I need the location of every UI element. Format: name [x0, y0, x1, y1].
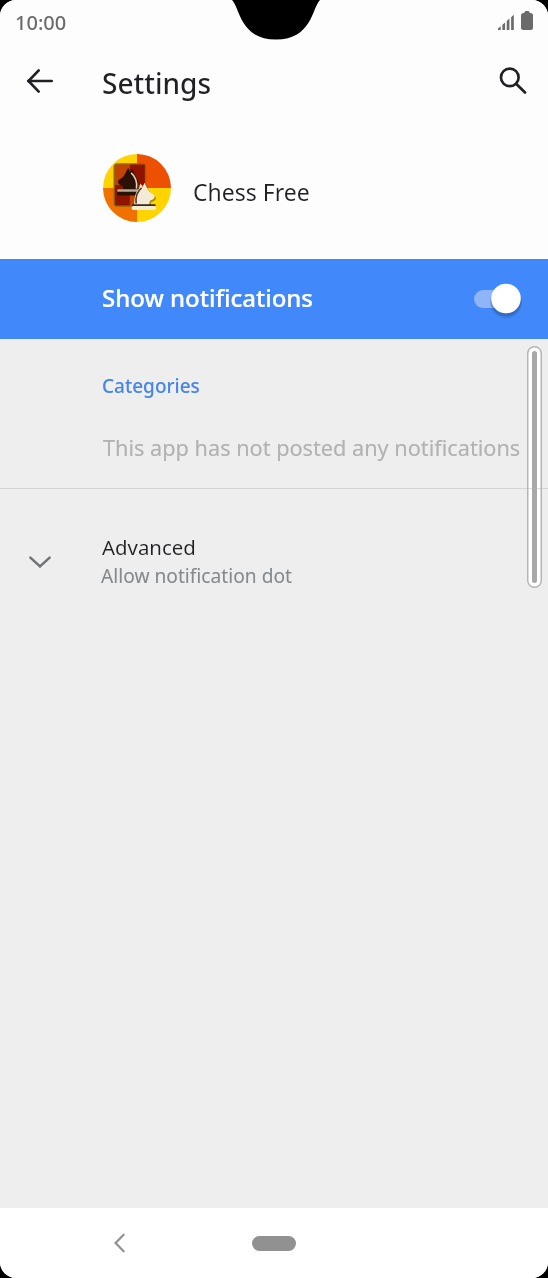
staticText: Settings	[102, 64, 212, 102]
button[interactable]: Back	[12, 53, 68, 109]
staticText: Allow notification dot	[101, 562, 292, 588]
button[interactable]: Expand advanced	[0, 489, 548, 599]
staticText: 10:00	[15, 9, 67, 36]
staticText: Chess Free	[193, 176, 310, 207]
staticText: This app has not posted any notification…	[103, 433, 521, 463]
button[interactable]: Show notifications toggle, on	[470, 277, 526, 321]
button[interactable]: Show notifications	[0, 259, 548, 339]
staticText: Categories	[102, 373, 200, 399]
staticText: Show notifications	[102, 281, 314, 314]
other: Scroll	[527, 346, 542, 588]
button[interactable]: Search	[485, 54, 541, 110]
button[interactable]: Categories	[0, 339, 548, 488]
button[interactable]: Home	[242, 1225, 306, 1261]
staticText: Advanced	[102, 533, 196, 561]
button[interactable]: Chess Free	[0, 120, 548, 259]
button[interactable]: Back	[96, 1219, 144, 1267]
other: Expand advanced	[27, 549, 53, 575]
